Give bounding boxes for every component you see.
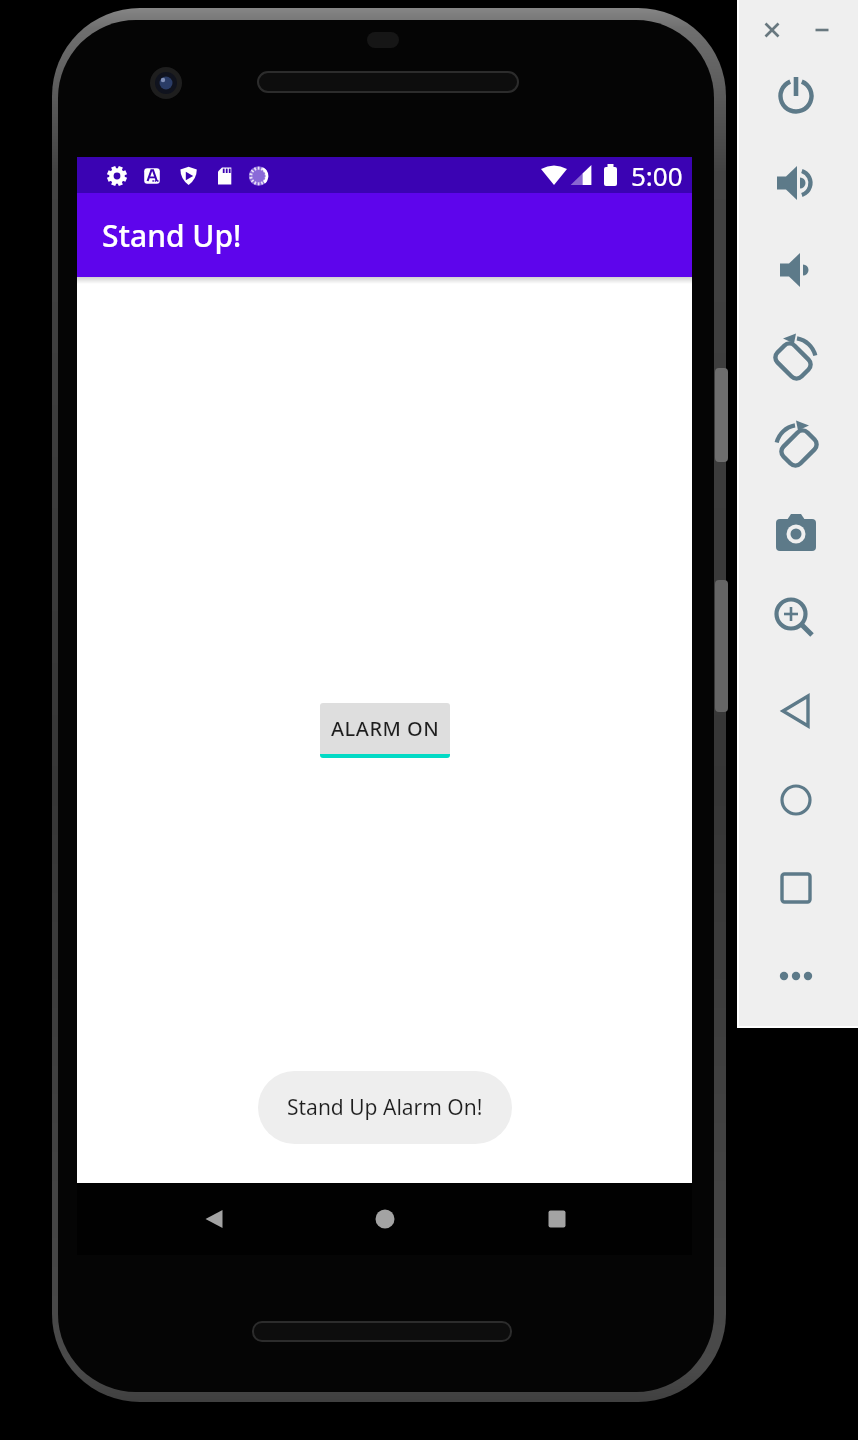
button[interactable] [760, 18, 784, 42]
button[interactable] [772, 687, 820, 735]
button[interactable] [772, 595, 820, 643]
button[interactable] [772, 159, 820, 207]
button[interactable] [772, 333, 820, 381]
staticText: Stand Up! [102, 215, 242, 256]
button[interactable] [533, 1195, 581, 1243]
staticText: ALARM ON [331, 715, 440, 742]
button[interactable] [190, 1195, 238, 1243]
button[interactable] [772, 246, 820, 294]
button[interactable] [772, 952, 820, 1000]
button[interactable] [772, 420, 820, 468]
button[interactable] [772, 72, 820, 120]
button[interactable]: Stand Up Alarm On! [258, 1071, 512, 1144]
button[interactable] [772, 864, 820, 912]
button[interactable]: ALARM ON [320, 703, 450, 758]
button[interactable] [772, 776, 820, 824]
button[interactable] [810, 18, 834, 42]
button[interactable] [772, 508, 820, 556]
staticText: 5:00 [631, 158, 683, 193]
button[interactable] [361, 1195, 409, 1243]
staticText: Stand Up Alarm On! [287, 1093, 483, 1122]
